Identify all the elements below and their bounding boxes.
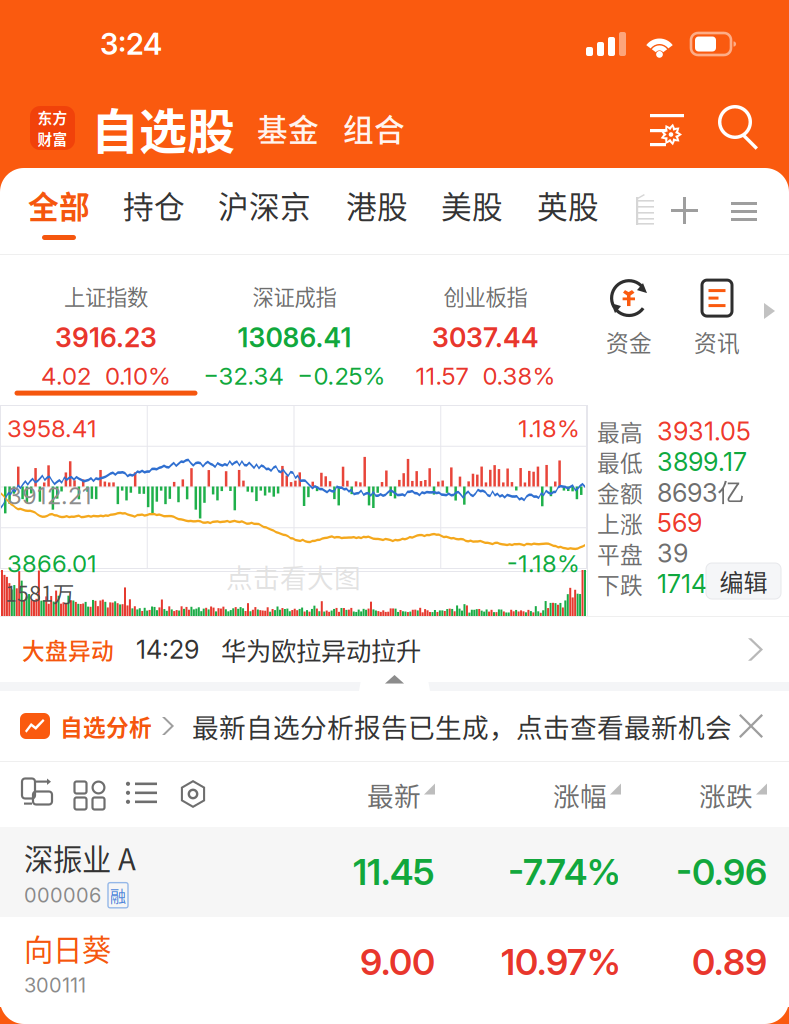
staticText: 0.89 <box>692 940 767 984</box>
button[interactable]: 深振业 A <box>0 827 789 917</box>
staticText: 最新自选分析报告已生成，点击查看最新机会 <box>192 707 732 745</box>
button[interactable]: 大盘异动 <box>0 617 789 682</box>
staticText: 基金 <box>257 106 319 150</box>
staticText: 11.45 <box>353 850 435 894</box>
staticText: 港股 <box>346 183 408 227</box>
staticText: 平盘 <box>597 537 643 570</box>
staticText: 美股 <box>441 183 503 227</box>
staticText: 资金 <box>606 325 652 358</box>
button[interactable]: 列表视图 <box>106 778 158 810</box>
staticText: 39 <box>657 538 688 569</box>
staticText: 11.57 <box>415 362 468 391</box>
staticText: 1581万 <box>5 577 74 608</box>
staticText: 金额 <box>597 476 643 509</box>
button[interactable]: 港股 <box>311 168 408 254</box>
staticText: 深振业 A <box>24 836 136 879</box>
staticText: 14:29 <box>136 634 199 665</box>
staticText: 3931.05 <box>657 416 751 447</box>
staticText: 000006 <box>24 883 101 907</box>
button[interactable]: 深证成指 <box>212 255 377 405</box>
button[interactable]: 东方财富 <box>30 106 75 150</box>
button[interactable]: 切换视图 <box>22 778 54 810</box>
button[interactable]: 网格视图 <box>54 778 106 810</box>
staticText: 持仓 <box>123 183 185 227</box>
staticText: 创业板指 <box>443 280 527 311</box>
staticText: -7.74% <box>508 850 621 894</box>
button[interactable]: 美股 <box>408 168 503 254</box>
button[interactable]: 涨跌 <box>621 762 767 826</box>
staticText: 8693亿 <box>657 476 743 508</box>
staticText: 东方 <box>37 107 67 128</box>
staticText: 0.38% <box>482 362 555 391</box>
staticText: 3037.44 <box>432 321 539 354</box>
staticText: 最新 <box>367 775 421 814</box>
staticText: -0.96 <box>676 850 767 894</box>
staticText: 财富 <box>37 128 67 149</box>
staticText: 自选分析 <box>60 710 152 742</box>
staticText: 3:24 <box>100 26 162 62</box>
button[interactable]: 涨幅 <box>435 762 621 826</box>
staticText: −0.25% <box>297 362 385 391</box>
button[interactable]: 关闭 <box>739 714 763 738</box>
button[interactable]: 更多 <box>698 191 757 231</box>
staticText: 3916.23 <box>55 321 157 354</box>
button[interactable]: 排序 <box>636 191 654 231</box>
staticText: 向日葵 <box>24 927 111 969</box>
staticText: 涨幅 <box>553 775 607 814</box>
staticText: 最高 <box>597 415 643 448</box>
button[interactable]: 上证指数 <box>0 255 212 405</box>
staticText: 涨跌 <box>699 775 753 814</box>
staticText: 3899.17 <box>657 446 747 477</box>
button[interactable]: 自选分析 <box>20 710 174 742</box>
staticText: 300111 <box>24 973 86 997</box>
staticText: -1.18% <box>507 549 580 578</box>
staticText: 4.02 <box>41 362 91 391</box>
staticText: −32.34 <box>203 362 283 391</box>
staticText: 9.00 <box>360 940 435 984</box>
button[interactable]: 添加自选 <box>654 191 698 231</box>
staticText: 英股 <box>537 183 599 227</box>
button[interactable]: 资金 <box>606 276 652 384</box>
button[interactable]: 创业板指 <box>377 255 594 405</box>
staticText: 3866.01 <box>7 549 97 578</box>
button[interactable]: 编辑 <box>706 563 781 599</box>
staticText: 13086.41 <box>237 321 351 354</box>
staticText: 编辑 <box>719 564 767 598</box>
button[interactable]: 向日葵 <box>0 917 789 1007</box>
button[interactable]: 筛选 <box>650 108 690 148</box>
button[interactable]: 英股 <box>503 168 599 254</box>
staticText: 0.10% <box>105 362 171 391</box>
button[interactable]: 全部 <box>28 168 90 254</box>
staticText: 3912.21 <box>7 481 92 510</box>
button[interactable]: 设置 <box>158 778 210 810</box>
staticText: 大盘异动 <box>22 633 114 666</box>
button[interactable]: 搜索 <box>690 105 763 151</box>
button[interactable]: 基金 <box>235 98 329 158</box>
staticText: 融 <box>110 884 126 907</box>
staticText: 沪深京 <box>218 183 311 227</box>
staticText: 1714 <box>657 568 707 599</box>
button[interactable]: 资讯 <box>652 276 740 384</box>
staticText: 点击看大图 <box>226 557 361 596</box>
staticText: 10.97% <box>501 940 621 984</box>
staticText: 资讯 <box>694 325 740 358</box>
staticText: 深证成指 <box>252 280 336 311</box>
staticText: 组合 <box>343 106 405 150</box>
button[interactable]: 最新 <box>283 762 435 826</box>
staticText: 上证指数 <box>64 280 148 311</box>
staticText: 569 <box>657 507 702 538</box>
button[interactable]: 组合 <box>329 98 415 158</box>
button[interactable]: 持仓 <box>90 168 185 254</box>
staticText: 自选股 <box>91 93 235 163</box>
staticText: 3958.41 <box>7 414 97 443</box>
staticText: 华为欧拉异动拉升 <box>221 631 421 668</box>
staticText: 最低 <box>597 445 643 478</box>
staticText: 全部 <box>28 183 90 227</box>
staticText: 下跌 <box>597 567 643 600</box>
staticText: 上涨 <box>597 506 643 539</box>
staticText: 1.18% <box>518 414 580 443</box>
button[interactable]: 沪深京 <box>185 168 311 254</box>
